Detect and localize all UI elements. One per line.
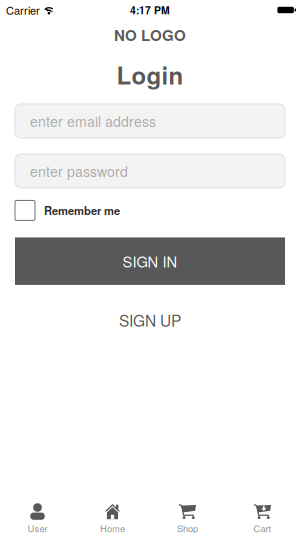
- staticText: Carrier: [6, 2, 40, 18]
- staticText: enter email address: [30, 111, 156, 131]
- button[interactable]: Remember me: [0, 200, 300, 220]
- staticText: Home: [100, 521, 125, 533]
- button[interactable]: enter email address: [15, 104, 285, 138]
- staticText: User: [27, 521, 47, 533]
- button[interactable]: Shop: [150, 483, 225, 533]
- staticText: SIGN IN: [122, 251, 177, 272]
- button[interactable]: Cart: [225, 483, 300, 533]
- staticText: enter password: [30, 161, 128, 181]
- staticText: Shop: [177, 521, 198, 533]
- staticText: 4:17 PM: [130, 3, 170, 17]
- button[interactable]: SIGN UP: [119, 309, 181, 331]
- button[interactable]: User: [0, 483, 75, 533]
- staticText: Cart: [253, 521, 271, 533]
- button[interactable]: enter password: [15, 154, 285, 188]
- staticText: NO LOGO: [114, 24, 186, 46]
- button[interactable]: Home: [75, 483, 150, 533]
- staticText: Remember me: [44, 202, 120, 218]
- button[interactable]: SIGN IN: [15, 237, 285, 285]
- staticText: SIGN UP: [119, 309, 181, 331]
- staticText: Login: [116, 58, 183, 92]
